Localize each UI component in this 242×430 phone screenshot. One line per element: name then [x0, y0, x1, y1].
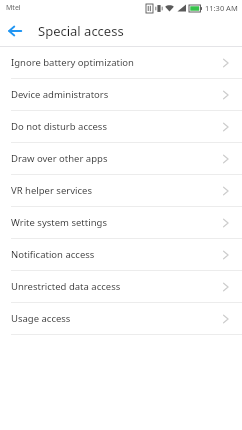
other: NFC	[146, 4, 153, 13]
staticText: VR helper services	[11, 184, 92, 197]
staticText: Notification access	[11, 248, 95, 261]
other: Vibrate	[155, 4, 163, 13]
staticText: Draw over other apps	[11, 152, 108, 165]
other: Battery	[189, 5, 202, 12]
staticText: Usage access	[11, 312, 71, 325]
other: Wi-Fi	[165, 4, 174, 13]
staticText: Write system settings	[11, 216, 107, 229]
button[interactable]: Write system settings	[0, 207, 242, 238]
staticText: Do not disturb access	[11, 120, 107, 133]
staticText: Special access	[38, 22, 124, 40]
staticText: Ignore battery optimization	[11, 56, 134, 69]
other: Signal strength	[177, 4, 186, 12]
button[interactable]: VR helper services	[0, 175, 242, 206]
button[interactable]: Notification access	[0, 239, 242, 270]
staticText: Device administrators	[11, 88, 109, 101]
staticText: Mtel	[6, 3, 21, 13]
button[interactable]: Back	[0, 16, 30, 46]
button[interactable]: Do not disturb access	[0, 111, 242, 142]
button[interactable]: Device administrators	[0, 79, 242, 110]
staticText: 11:30 AM	[205, 3, 238, 13]
staticText: Unrestricted data access	[11, 280, 121, 293]
button[interactable]: Unrestricted data access	[0, 271, 242, 302]
button[interactable]: Ignore battery optimization	[0, 47, 242, 78]
button[interactable]: Draw over other apps	[0, 143, 242, 174]
button[interactable]: Usage access	[0, 303, 242, 334]
